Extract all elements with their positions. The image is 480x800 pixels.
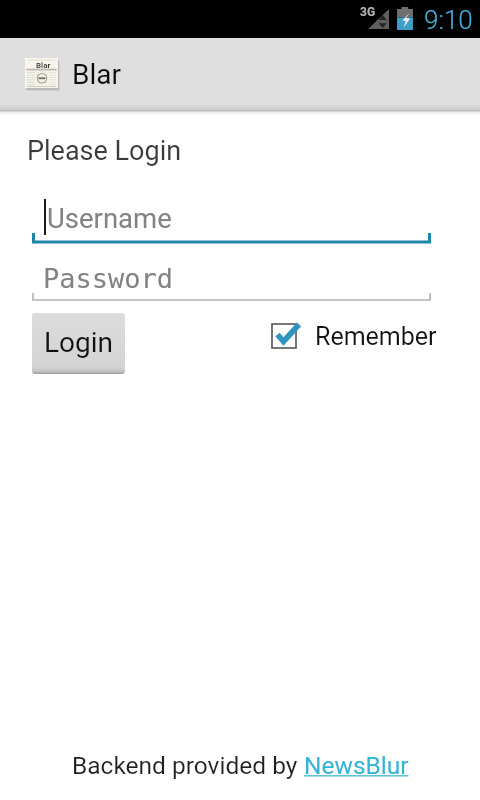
staticText: Remember xyxy=(315,322,437,351)
staticText: Password xyxy=(43,263,174,294)
staticText: Blar xyxy=(72,58,121,91)
staticText: 3G xyxy=(360,5,376,19)
staticText: Username xyxy=(47,202,172,234)
staticText: NewsBlur xyxy=(304,751,409,780)
staticText: Please Login xyxy=(27,135,182,167)
button[interactable]: Remember xyxy=(268,313,437,359)
button[interactable]: NewsBlur xyxy=(304,751,409,780)
button[interactable]: Password xyxy=(32,255,431,303)
staticText: 9:10 xyxy=(424,5,473,35)
other: Remember xyxy=(268,313,302,359)
staticText: Blar xyxy=(36,61,51,70)
staticText: Backend provided by xyxy=(72,751,304,780)
button[interactable]: Username xyxy=(32,196,431,244)
button[interactable]: Login xyxy=(32,313,125,374)
staticText: Login xyxy=(44,326,114,359)
